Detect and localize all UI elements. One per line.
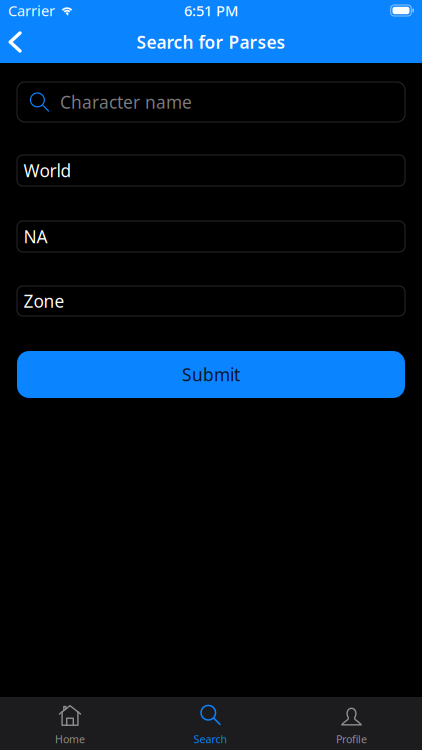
staticText: Submit xyxy=(182,363,240,386)
button[interactable]: Profile xyxy=(281,696,422,750)
staticText: Carrier xyxy=(8,1,55,20)
staticText: World xyxy=(23,159,71,182)
button[interactable]: Back xyxy=(0,21,30,63)
staticText: Home xyxy=(55,732,85,746)
button[interactable]: Submit xyxy=(17,351,405,398)
staticText: 6:51 PM xyxy=(184,1,238,20)
staticText: Character name xyxy=(60,90,192,113)
staticText: NA xyxy=(23,225,47,248)
button[interactable]: World xyxy=(17,155,405,186)
button[interactable]: NA xyxy=(17,221,405,252)
staticText: Search for Parses xyxy=(136,30,285,53)
staticText: Search xyxy=(193,732,227,746)
staticText: Zone xyxy=(23,289,64,312)
button[interactable]: Home xyxy=(0,696,140,750)
button[interactable]: Search xyxy=(140,696,281,750)
button[interactable]: Zone xyxy=(17,286,405,316)
button[interactable]: Character name xyxy=(17,82,405,122)
staticText: Profile xyxy=(336,732,367,746)
